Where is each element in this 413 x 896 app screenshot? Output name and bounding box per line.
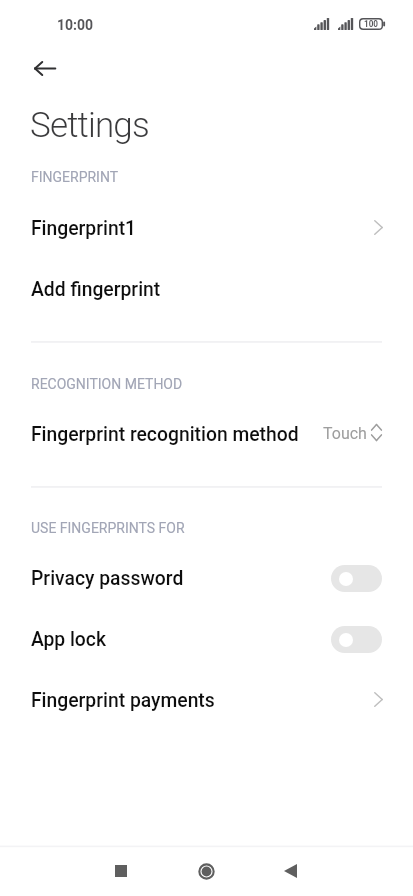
- staticText: Add fingerprint: [31, 278, 161, 301]
- staticText: Fingerprint payments: [31, 689, 215, 712]
- button[interactable]: Toggle Privacy password: [331, 565, 382, 592]
- staticText: USE FINGERPRINTS FOR: [31, 520, 185, 536]
- staticText: Settings: [30, 105, 149, 146]
- staticText: 10:00: [57, 17, 94, 33]
- staticText: 100: [361, 19, 381, 29]
- button[interactable]: Add fingerprint: [0, 250, 413, 311]
- button[interactable]: Toggle App lock: [331, 626, 382, 653]
- button[interactable]: Home: [178, 843, 234, 896]
- button[interactable]: Back: [22, 46, 67, 91]
- staticText: Fingerprint1: [31, 217, 137, 240]
- button[interactable]: Back: [262, 843, 318, 896]
- button[interactable]: Fingerprint recognition method: [0, 395, 413, 456]
- staticText: App lock: [31, 628, 107, 651]
- button[interactable]: Privacy password: [0, 539, 413, 600]
- staticText: RECOGNITION METHOD: [31, 376, 183, 392]
- button[interactable]: Fingerprint1: [0, 189, 413, 250]
- staticText: Fingerprint recognition method: [31, 423, 299, 446]
- staticText: Touch: [323, 424, 367, 443]
- button[interactable]: Change recognition method: [364, 420, 388, 444]
- button[interactable]: Fingerprint payments: [0, 661, 413, 722]
- button[interactable]: App lock: [0, 600, 413, 661]
- button[interactable]: Recent apps: [93, 843, 149, 896]
- staticText: Privacy password: [31, 567, 184, 590]
- staticText: FINGERPRINT: [31, 169, 119, 185]
